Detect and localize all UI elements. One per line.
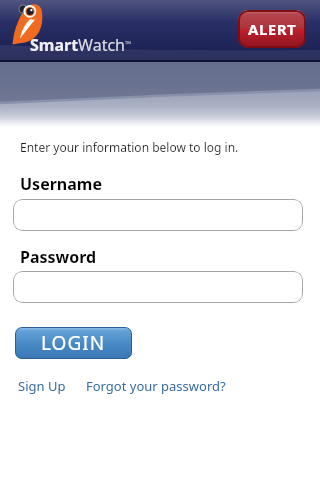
staticText: LOGIN: [41, 330, 106, 356]
button[interactable]: [13, 271, 303, 303]
button[interactable]: [13, 199, 303, 231]
button[interactable]: Forgot your password?: [86, 377, 226, 395]
staticText: Username: [20, 173, 102, 195]
button[interactable]: ALERT: [238, 10, 306, 48]
staticText: Enter your information below to log in.: [20, 139, 239, 155]
staticText: SmartWatch™: [30, 34, 132, 56]
button[interactable]: LOGIN: [15, 327, 132, 359]
staticText: Password: [20, 246, 97, 268]
staticText: ALERT: [248, 19, 297, 39]
button[interactable]: Sign Up: [18, 377, 66, 395]
